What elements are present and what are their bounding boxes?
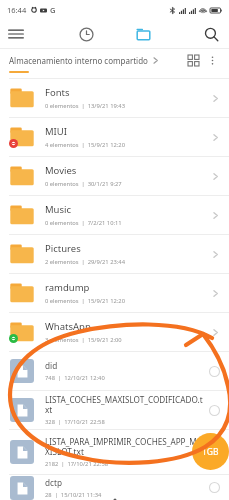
staticText: 16:44: [7, 5, 27, 15]
staticText: dctp: [45, 477, 62, 488]
button[interactable]: Search: [172, 20, 229, 48]
button[interactable]: LISTA_PARA_IMPRIMIR_COCHES_APP_MAXISLOT.…: [0, 430, 229, 475]
staticText: 0 elementos | 15/9/21 12:20: [45, 297, 125, 305]
button[interactable]: Pictures: [0, 235, 229, 274]
button[interactable]: Grid view: [183, 50, 203, 70]
staticText: LISTA_COCHES_MAXISLOT_CODIFICADO.txt: [45, 394, 203, 415]
staticText: WhatsApp: [45, 320, 91, 333]
button[interactable]: did: [0, 352, 229, 391]
button[interactable]: Movies: [0, 157, 229, 196]
staticText: 1GB: [202, 446, 219, 458]
button[interactable]: MIUI: [0, 118, 229, 157]
button[interactable]: ramdump: [0, 274, 229, 313]
staticText: 748 | 12/10/21 12:40: [45, 374, 105, 382]
staticText: 0 elementos | 13/9/21 19:43: [45, 102, 125, 110]
button[interactable]: More options: [203, 51, 221, 69]
button[interactable]: Storage 1GB: [192, 433, 229, 470]
button[interactable]: WhatsApp: [0, 313, 229, 352]
button[interactable]: Recent: [58, 20, 115, 48]
staticText: 28 | 15/10/21 11:34: [45, 491, 102, 499]
staticText: did: [45, 360, 58, 371]
staticText: Pictures: [45, 242, 81, 255]
staticText: 3 elementos | 15/9/21 2:00: [45, 336, 122, 344]
button[interactable]: Music: [0, 196, 229, 235]
staticText: LISTA_PARA_IMPRIMIR_COCHES_APP_MAXISLOT.…: [45, 436, 203, 457]
button[interactable]: Files: [115, 20, 172, 48]
button[interactable]: LISTA_COCHES_MAXISLOT_CODIFICADO.txt: [0, 391, 229, 430]
staticText: 2 elementos | 29/9/21 23:44: [45, 258, 125, 266]
staticText: 328 | 17/10/21 22:58: [45, 418, 105, 426]
staticText: Movies: [45, 164, 77, 177]
staticText: 0 elementos | 7/2/21 10:11: [45, 219, 122, 227]
button[interactable]: Menu: [0, 20, 58, 48]
staticText: MIUI: [45, 125, 68, 138]
staticText: Fonts: [45, 86, 70, 99]
staticText: Music: [45, 203, 72, 216]
staticText: ramdump: [45, 281, 90, 294]
staticText: 0 elementos | 30/1/21 9:27: [45, 180, 122, 188]
staticText: G: [50, 5, 56, 15]
staticText: 4 elementos | 15/9/21 12:20: [45, 141, 125, 149]
staticText: 2182 | 17/10/21 22:58: [45, 460, 109, 468]
button[interactable]: Fonts: [0, 79, 229, 118]
staticText: Almacenamiento interno compartido: [9, 55, 148, 66]
button[interactable]: dctp: [0, 475, 229, 500]
button[interactable]: Almacenamiento interno compartido: [9, 55, 183, 66]
